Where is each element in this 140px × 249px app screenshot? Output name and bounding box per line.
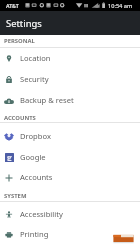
button[interactable]: Printing bbox=[0, 223, 140, 244]
staticText: SYSTEM bbox=[4, 192, 27, 200]
button[interactable]: Accessibility bbox=[0, 203, 140, 224]
staticText: Dropbox bbox=[20, 131, 51, 141]
button[interactable]: Dropbox bbox=[0, 125, 140, 146]
button[interactable]: Location bbox=[0, 47, 140, 68]
staticText: Accessibility bbox=[20, 209, 63, 219]
staticText: Accounts bbox=[20, 172, 53, 182]
staticText: 10:54 am bbox=[108, 2, 133, 10]
staticText: Google bbox=[20, 152, 46, 162]
staticText: AT&T bbox=[6, 2, 19, 9]
other: Printing bbox=[4, 230, 14, 240]
button[interactable]: Security bbox=[0, 68, 140, 89]
staticText: Security bbox=[20, 74, 49, 84]
other: Accessibility bbox=[4, 210, 14, 220]
other: Dropbox bbox=[4, 132, 14, 142]
staticText: Printing bbox=[20, 229, 49, 239]
button[interactable]: Backup and reset bbox=[0, 89, 140, 110]
other: Google bbox=[4, 153, 14, 163]
staticText: Backup & reset bbox=[20, 95, 74, 105]
button[interactable]: Add account bbox=[0, 166, 140, 187]
other: Add account bbox=[4, 173, 14, 183]
staticText: Settings bbox=[6, 17, 42, 30]
other: Location bbox=[4, 54, 14, 64]
staticText: PERSONAL bbox=[4, 37, 35, 45]
staticText: ACCOUNTS bbox=[4, 114, 36, 122]
other: Backup and reset bbox=[4, 96, 14, 106]
other: Security bbox=[4, 75, 14, 85]
button[interactable]: Google bbox=[0, 146, 140, 167]
staticText: Location bbox=[20, 53, 51, 63]
staticText: g bbox=[7, 153, 12, 161]
